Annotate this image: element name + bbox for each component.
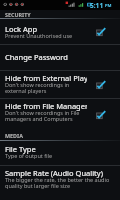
staticText: MEDIA	[5, 132, 23, 139]
button[interactable]: File Type	[0, 141, 120, 166]
button[interactable]: Hide from External Players	[0, 71, 120, 99]
staticText: Hide from External Players	[5, 73, 87, 83]
button[interactable]: Change Password	[0, 45, 120, 71]
button[interactable]: Hide from File Managers	[0, 99, 106, 131]
button[interactable]: Lock App	[0, 19, 120, 45]
staticText: PM	[105, 3, 112, 9]
staticText: Don't show recordings in File managers a…	[5, 109, 87, 123]
button[interactable]: Hide from External Players	[0, 71, 106, 99]
staticText: The bigger the rate, the better the audi…	[5, 176, 112, 190]
staticText: SECURITY	[5, 11, 31, 18]
staticText: Don't show recordings in external player…	[5, 81, 87, 95]
staticText: 5:11	[90, 1, 104, 10]
staticText: Prevent Unauthorised use	[5, 32, 73, 39]
staticText: Sample Rate (Audio Quality)	[5, 168, 103, 178]
staticText: Change Password	[5, 52, 68, 62]
button[interactable]: Lock App	[0, 19, 106, 45]
staticText: Lock App	[5, 24, 38, 34]
button[interactable]: Sample Rate (Audio Quality)	[0, 166, 120, 200]
button[interactable]: Hide from File Managers	[0, 99, 120, 131]
staticText: Type of output file	[5, 152, 53, 159]
staticText: File Type	[5, 144, 36, 154]
staticText: Hide from File Managers	[5, 101, 87, 111]
